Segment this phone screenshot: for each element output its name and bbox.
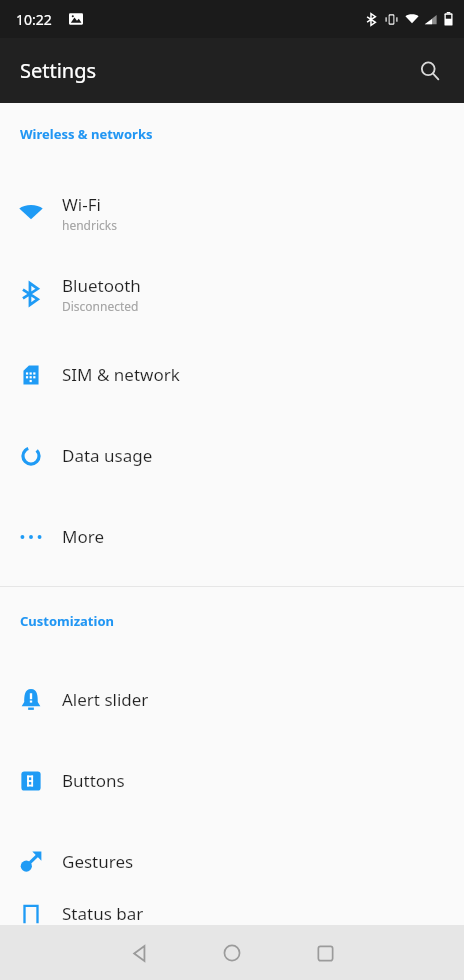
button[interactable]: SIM & network [0,334,464,415]
staticText: Gestures [62,850,134,873]
button[interactable]: Data usage [0,415,464,496]
button[interactable]: Recents [302,930,348,976]
button[interactable]: Wi-Fi [0,172,464,253]
staticText: Data usage [62,444,153,467]
button[interactable]: Status bar [0,902,464,925]
staticText: Status bar [62,902,144,925]
button[interactable]: Gestures [0,821,464,902]
staticText: SIM & network [62,363,180,386]
button[interactable]: Search [407,48,453,94]
staticText: Bluetooth [62,274,141,297]
staticText: Customization [20,612,114,630]
staticText: Alert slider [62,688,149,711]
staticText: Settings [20,57,97,84]
staticText: Buttons [62,769,125,792]
staticText: Wi-Fi [62,193,101,216]
staticText: Wireless & networks [20,125,153,143]
button[interactable]: Alert slider [0,659,464,740]
button[interactable]: Back [116,930,162,976]
staticText: hendricks [62,217,117,233]
button[interactable]: Buttons [0,740,464,821]
button[interactable]: More [0,496,464,577]
staticText: More [62,525,104,548]
staticText: Disconnected [62,298,139,314]
button[interactable]: Bluetooth [0,253,464,334]
staticText: 10:22 [16,10,52,29]
button[interactable]: Home [209,930,255,976]
